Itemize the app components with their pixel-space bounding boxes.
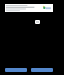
button[interactable]: Label (35, 20, 40, 24)
button[interactable]: Cancel (5, 68, 27, 72)
button[interactable]: Page header (5, 4, 53, 12)
button[interactable]: Confirm (31, 68, 53, 72)
